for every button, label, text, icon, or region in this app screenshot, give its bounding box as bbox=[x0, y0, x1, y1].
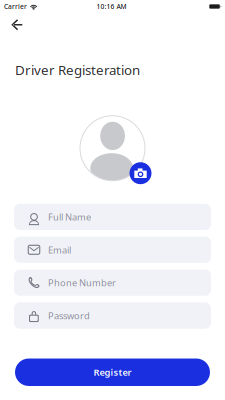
button[interactable]: Email bbox=[14, 237, 211, 263]
button[interactable]: Phone Number bbox=[14, 269, 211, 296]
button[interactable]: Register bbox=[15, 358, 210, 386]
button[interactable]: Full Name bbox=[14, 204, 211, 230]
staticText: 10:16 AM bbox=[96, 2, 126, 11]
staticText: Driver Registeration bbox=[15, 61, 140, 79]
button[interactable]: Back bbox=[5, 13, 29, 30]
staticText: Register bbox=[93, 366, 131, 378]
staticText: Email bbox=[48, 244, 71, 256]
staticText: Full Name bbox=[48, 211, 91, 223]
staticText: Password bbox=[48, 309, 90, 322]
button[interactable]: Password bbox=[14, 302, 211, 329]
staticText: Carrier bbox=[4, 2, 27, 11]
staticText: Phone Number bbox=[48, 276, 116, 289]
